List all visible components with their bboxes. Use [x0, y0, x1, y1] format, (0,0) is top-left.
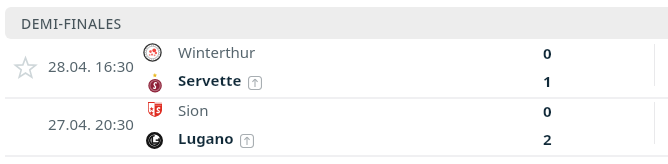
staticText: 0 — [543, 43, 552, 63]
staticText: Sion — [178, 100, 209, 120]
staticText: Lugano — [178, 128, 234, 148]
button[interactable]: DEMI-FINALES — [5, 7, 668, 39]
staticText: 27.04. 20:30 — [48, 114, 135, 134]
staticText: 28.04. 16:30 — [48, 56, 135, 76]
staticText: DEMI-FINALES — [21, 14, 122, 33]
staticText: 1 — [543, 71, 552, 91]
staticText: 0 — [543, 101, 552, 121]
staticText: Servette — [178, 70, 242, 90]
button[interactable]: Favourite — [14, 57, 37, 80]
staticText: Winterthur — [178, 42, 256, 62]
button[interactable]: 27.04. 20:30 — [0, 97, 668, 155]
staticText: 2 — [543, 129, 552, 149]
button[interactable]: Favourite — [0, 39, 668, 97]
